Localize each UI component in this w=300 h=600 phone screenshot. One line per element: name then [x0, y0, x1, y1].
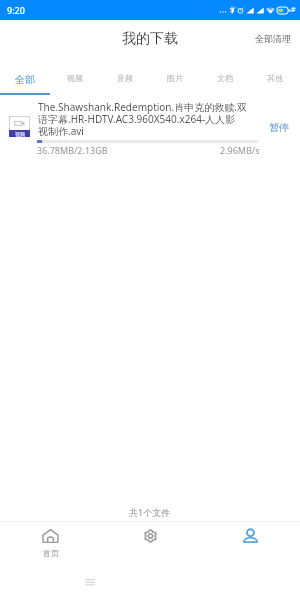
button[interactable]: 视频 [50, 56, 100, 95]
staticText: 9:20 [7, 4, 25, 16]
button[interactable]: 全部 [0, 56, 50, 95]
staticText: 全部 [15, 73, 35, 86]
staticText: 文档 [217, 73, 233, 83]
button[interactable]: Settings [100, 522, 200, 563]
button[interactable]: 其他 [250, 56, 300, 95]
button[interactable]: Home [0, 522, 100, 563]
button[interactable]: Profile [200, 522, 300, 563]
button[interactable]: Recents [85, 577, 95, 587]
button[interactable]: 音频 [100, 56, 150, 95]
staticText: 图片 [167, 73, 183, 83]
staticText: 首页 [43, 548, 59, 558]
staticText: 音频 [117, 73, 133, 83]
staticText: The.Shawshank.Redemption.肖申克的救赎.双 语字幕.HR… [38, 100, 249, 138]
button[interactable]: 视频 [0, 95, 300, 165]
staticText: 全部清理 [255, 33, 291, 44]
staticText: 暂停 [269, 121, 289, 134]
staticText: 视频 [15, 131, 25, 137]
staticText: 视频 [67, 73, 83, 83]
staticText: 我的下载 [122, 30, 178, 48]
staticText: # [291, 5, 296, 15]
staticText: 共1个文件 [129, 506, 171, 518]
staticText: 36.78MB/2.13GB [37, 144, 108, 156]
button[interactable]: 暂停 [267, 119, 291, 136]
staticText: 2.96MB/s [220, 144, 260, 156]
staticText: 其他 [267, 73, 283, 83]
button[interactable]: 图片 [150, 56, 200, 95]
button[interactable]: 文档 [200, 56, 250, 95]
button[interactable]: 全部清理 [246, 26, 300, 51]
